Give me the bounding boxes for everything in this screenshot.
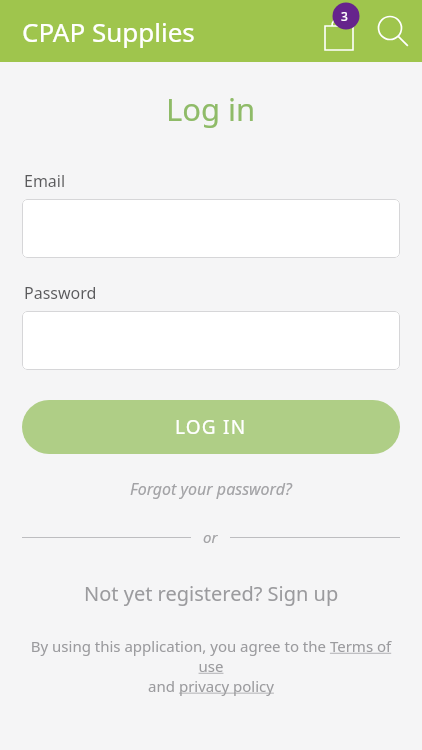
staticText: Not yet registered? Sign up [84, 580, 339, 607]
button[interactable] [22, 199, 400, 258]
staticText: LOG IN [175, 414, 247, 440]
button[interactable]: Not yet registered? Sign up [70, 575, 353, 612]
staticText: By using this application, you agree to … [22, 636, 400, 696]
button[interactable]: Search [370, 0, 414, 62]
staticText: Email [24, 170, 66, 192]
staticText: Password [24, 282, 97, 304]
staticText: 3 [341, 8, 348, 24]
staticText: CPAP Supplies [22, 14, 195, 49]
staticText: or [203, 527, 218, 547]
button[interactable]: LOG IN [22, 400, 400, 454]
button[interactable]: Forgot your password? [118, 474, 304, 504]
button[interactable]: Cart, 3 items [312, 0, 364, 62]
staticText: Forgot your password? [130, 478, 292, 500]
staticText: Log in [166, 88, 256, 130]
button[interactable] [22, 311, 400, 370]
